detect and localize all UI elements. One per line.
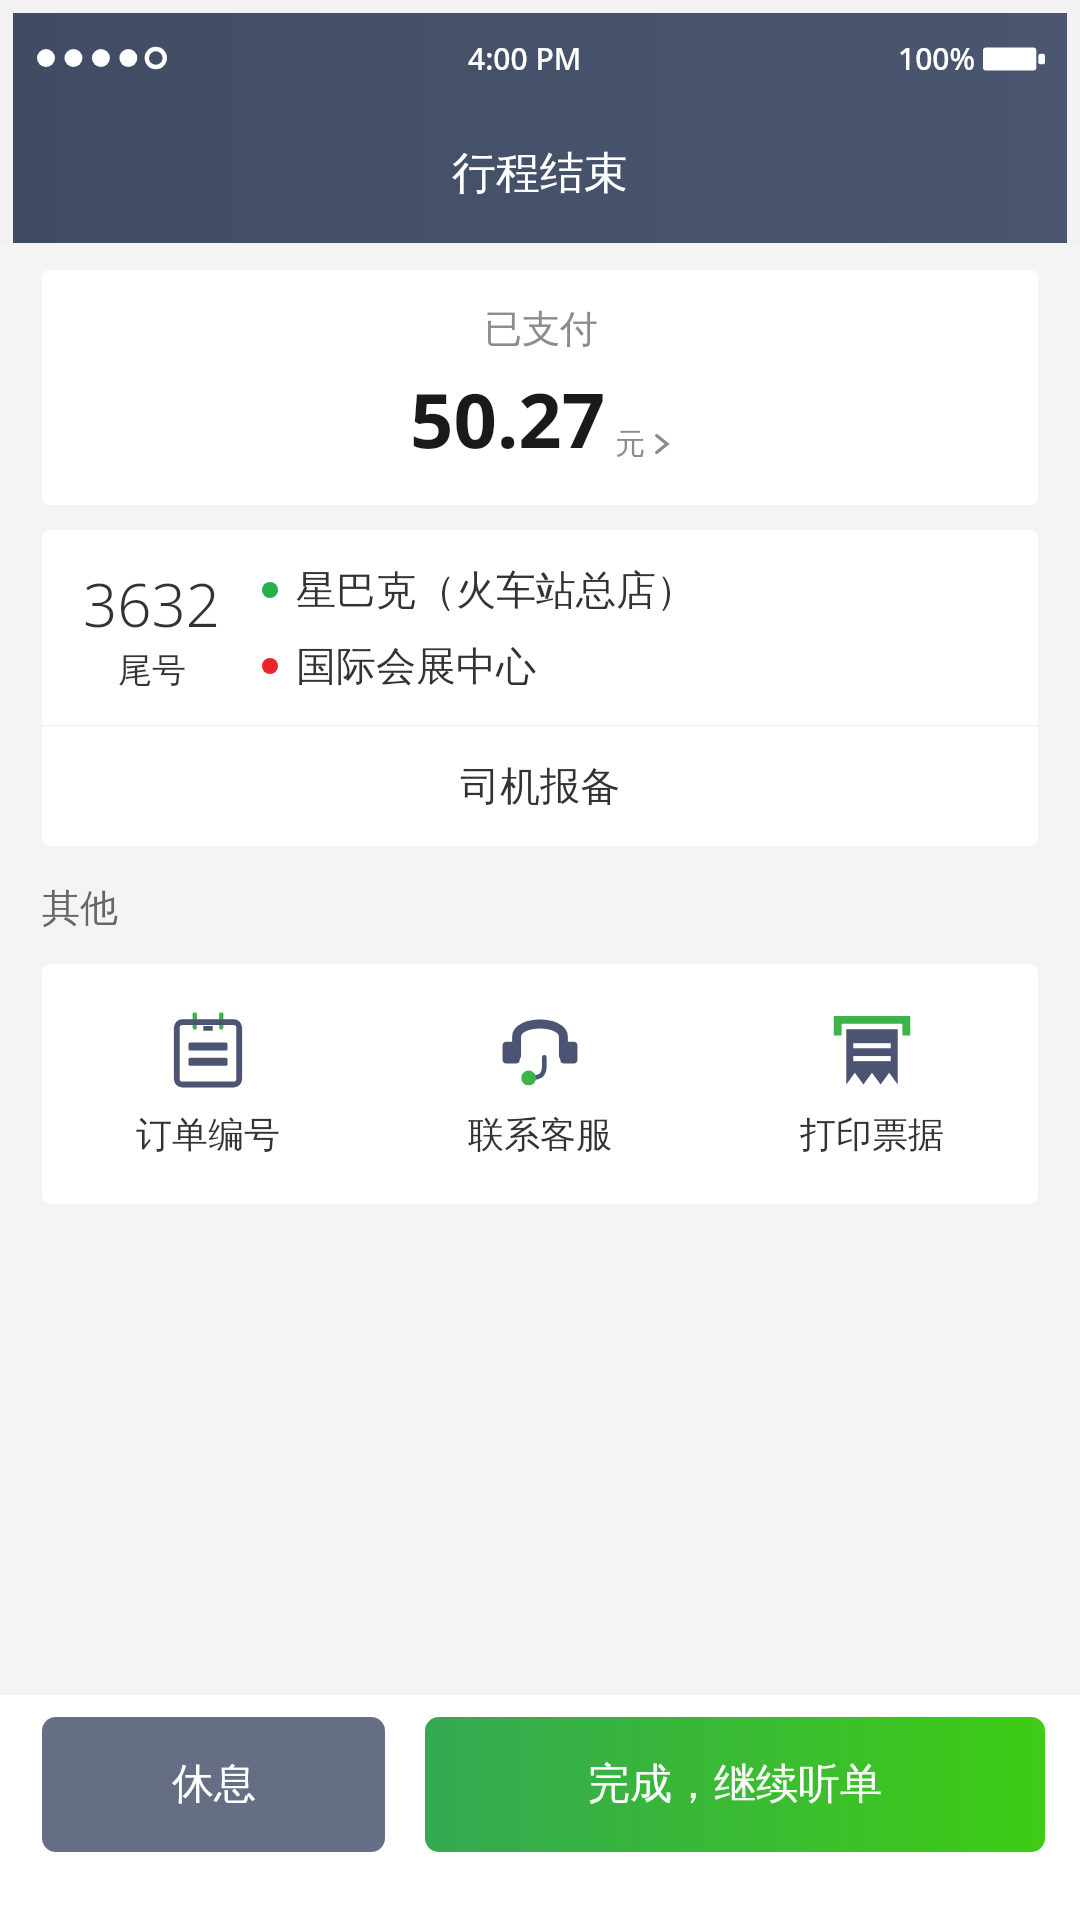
button[interactable]: 打印票据 (706, 964, 1038, 1204)
staticText: 完成，继续听单 (588, 1758, 882, 1811)
button[interactable]: 联系客服 (374, 964, 706, 1204)
staticText: 订单编号 (136, 1112, 280, 1157)
staticText: 司机报备 (460, 761, 620, 811)
staticText: 休息 (172, 1758, 256, 1811)
staticText: 其他 (42, 884, 118, 932)
other: 联系客服 (501, 1012, 579, 1090)
button[interactable]: 订单编号 (42, 964, 374, 1204)
button[interactable]: 休息 (42, 1717, 385, 1852)
staticText: 50.27 (410, 367, 606, 471)
staticText: 元 (615, 425, 645, 463)
button[interactable]: 已支付 (42, 270, 1038, 505)
other: 打印票据 (833, 1012, 911, 1090)
staticText: 星巴克（火车站总店） (296, 565, 696, 615)
button[interactable]: 司机报备 (42, 726, 1038, 846)
staticText: 已支付 (484, 305, 598, 353)
other: 订单编号 (169, 1012, 247, 1090)
staticText: 行程结束 (452, 146, 628, 201)
button[interactable]: 3632 (42, 530, 1038, 725)
staticText: 国际会展中心 (296, 641, 536, 691)
staticText: 联系客服 (468, 1112, 612, 1157)
staticText: 4:00 PM (468, 38, 582, 79)
staticText: 3632 (83, 563, 221, 645)
staticText: 尾号 (118, 649, 186, 692)
staticText: 打印票据 (800, 1112, 944, 1157)
button[interactable]: 完成，继续听单 (425, 1717, 1045, 1852)
staticText: 100% (898, 38, 976, 79)
